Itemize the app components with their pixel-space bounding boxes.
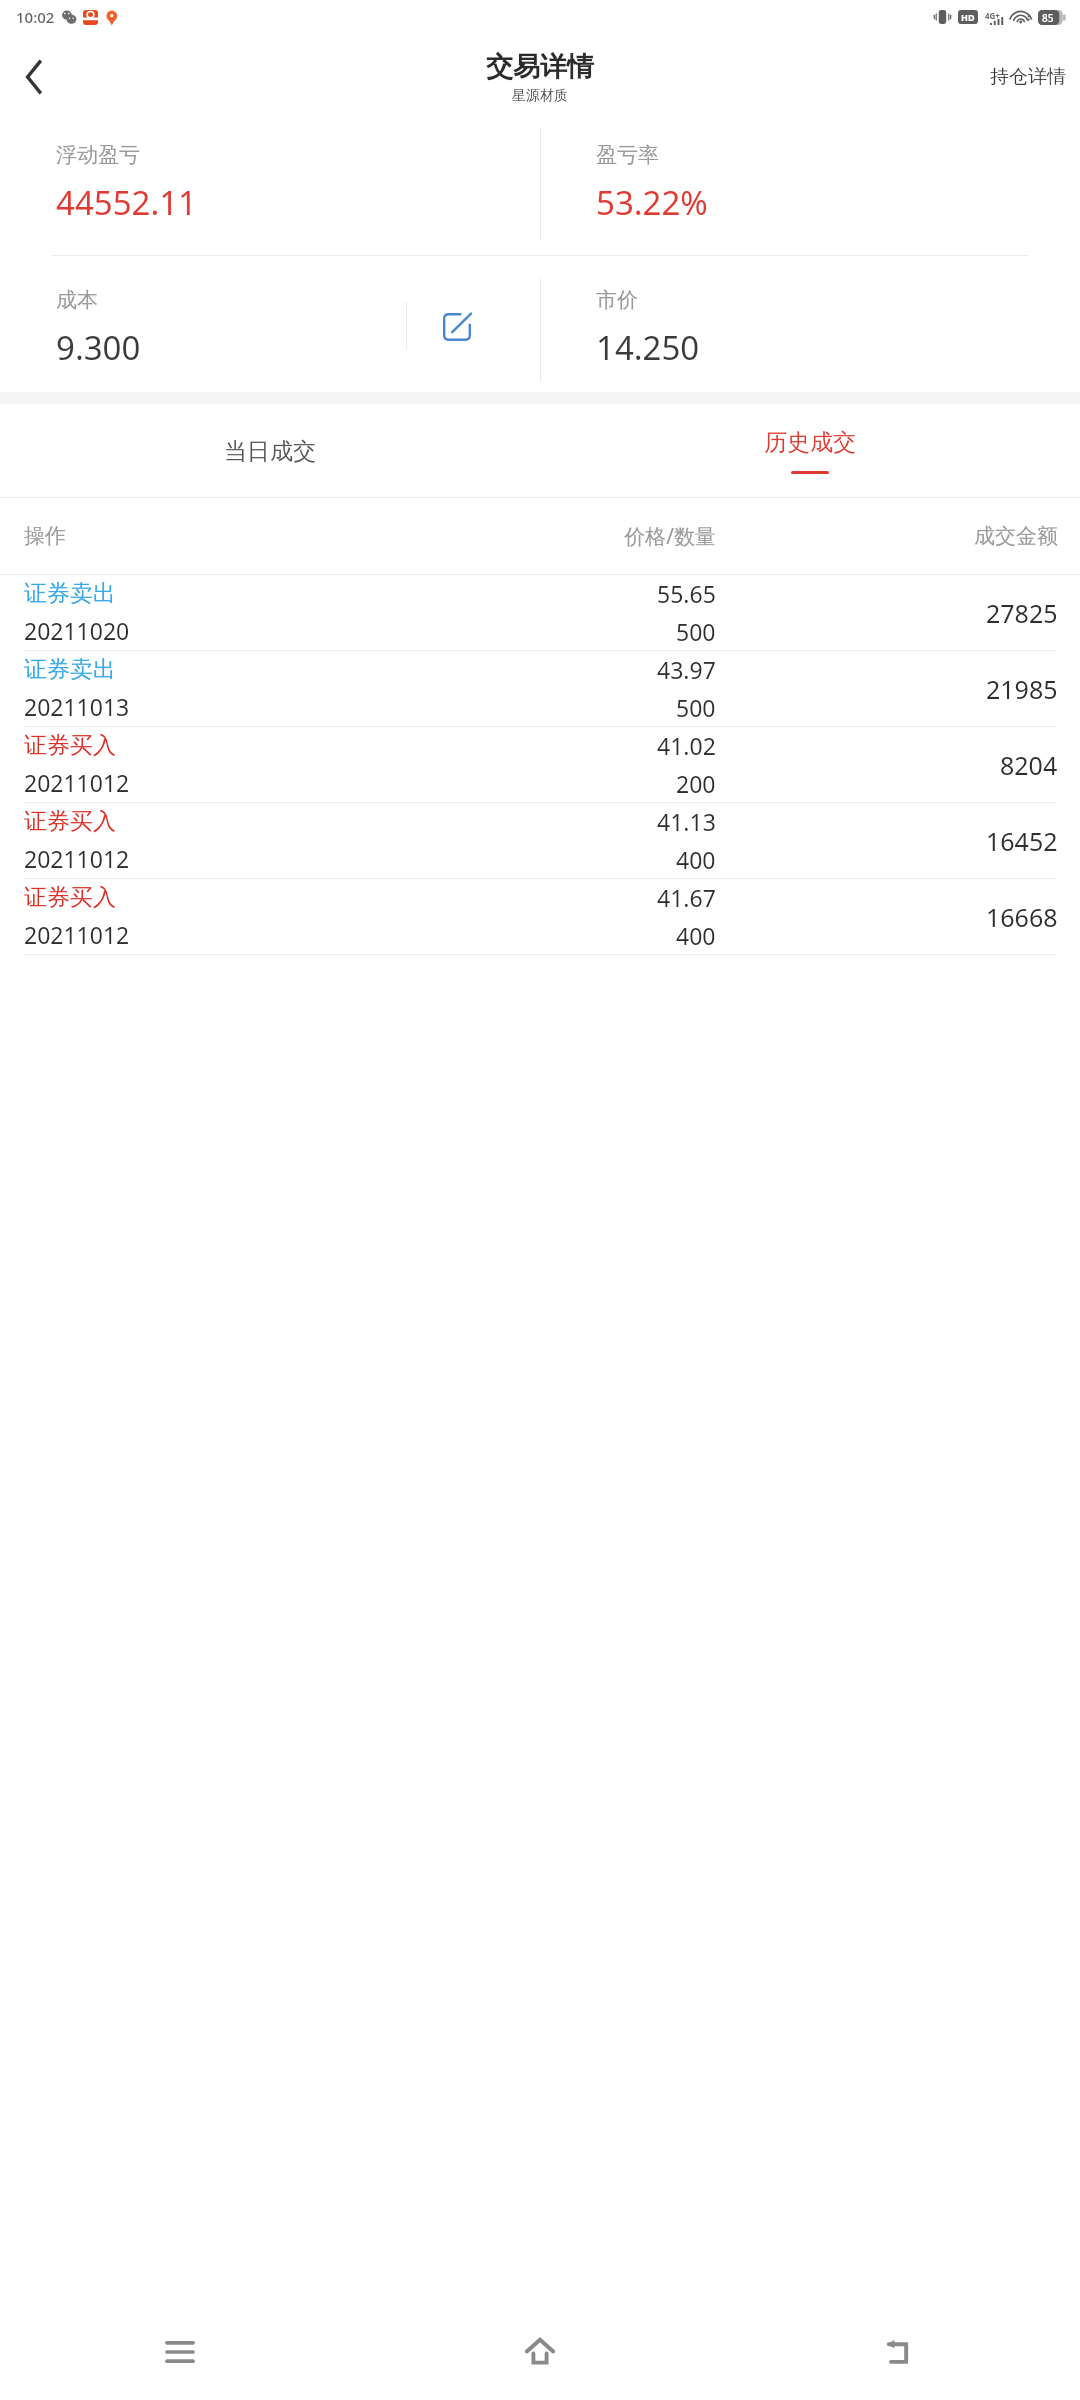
staticText: 27825 — [986, 596, 1058, 630]
button[interactable]: 证券买入 — [0, 803, 1080, 879]
staticText: 85 — [1042, 11, 1054, 25]
staticText: 成交金额 — [716, 523, 1058, 549]
button[interactable]: 证券卖出 — [0, 651, 1080, 727]
staticText: 9.300 — [56, 325, 141, 370]
staticText: 持仓详情 — [990, 65, 1066, 89]
staticText: 400 — [676, 920, 716, 951]
staticText: 8204 — [1000, 748, 1058, 782]
staticText: HD — [961, 11, 975, 23]
staticText: 历史成交 — [764, 428, 856, 457]
staticText: 20211012 — [24, 843, 130, 874]
staticText: 20211012 — [24, 919, 130, 950]
staticText: 16668 — [986, 900, 1058, 934]
staticText: 41.02 — [657, 730, 716, 761]
staticText: 20211013 — [24, 691, 130, 722]
button[interactable]: 证券买入 — [0, 879, 1080, 955]
button[interactable]: 当日成交 — [0, 404, 540, 498]
staticText: 证券买入 — [24, 731, 116, 760]
staticText: 交易详情 — [486, 50, 594, 84]
staticText: 20211012 — [24, 767, 130, 798]
staticText: 证券卖出 — [24, 579, 116, 608]
staticText: 证券卖出 — [24, 655, 116, 684]
staticText: 44552.11 — [56, 180, 197, 225]
staticText: 星源材质 — [512, 87, 568, 105]
staticText: 43.97 — [657, 654, 716, 685]
staticText: 操作 — [24, 523, 364, 549]
staticText: 4G+ — [985, 10, 1000, 21]
staticText: 市价 — [596, 287, 638, 313]
staticText: 53.22% — [596, 180, 708, 225]
staticText: 200 — [676, 768, 716, 799]
button[interactable]: 历史成交 — [540, 404, 1080, 498]
staticText: 10:02 — [16, 7, 55, 27]
staticText: 盈亏率 — [596, 142, 659, 168]
staticText: 41.13 — [657, 806, 716, 837]
staticText: 400 — [676, 844, 716, 875]
staticText: 41.67 — [657, 882, 716, 913]
staticText: 价格/数量 — [364, 522, 716, 551]
staticText: 浮动盈亏 — [56, 142, 140, 168]
button[interactable]: 持仓详情 — [980, 53, 1076, 101]
button[interactable]: Recent apps — [0, 2304, 360, 2400]
button[interactable]: 证券买入 — [0, 727, 1080, 803]
button[interactable]: Back — [720, 2304, 1080, 2400]
staticText: 证券买入 — [24, 807, 116, 836]
button[interactable]: Home — [360, 2304, 720, 2400]
staticText: 500 — [676, 616, 716, 647]
staticText: 16452 — [986, 824, 1058, 858]
staticText: 55.65 — [657, 578, 716, 609]
staticText: 21985 — [986, 672, 1058, 706]
button[interactable]: 证券卖出 — [0, 575, 1080, 651]
staticText: 500 — [676, 692, 716, 723]
button[interactable]: Back — [6, 49, 62, 105]
staticText: 20211020 — [24, 615, 130, 646]
staticText: 当日成交 — [224, 437, 316, 466]
button[interactable]: Edit cost — [428, 298, 486, 356]
staticText: 14.250 — [596, 325, 700, 370]
staticText: 成本 — [56, 287, 98, 313]
staticText: 证券买入 — [24, 883, 116, 912]
